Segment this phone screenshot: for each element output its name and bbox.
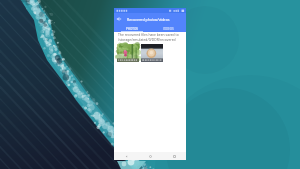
button[interactable]: Home [138,152,162,160]
staticText: VIDEOS [163,27,174,31]
button[interactable]: Recent apps [162,152,186,160]
button[interactable]: VIDEOS [150,25,186,32]
staticText: The recovered files have been saved to [118,32,179,37]
button[interactable]: PHOTOS [114,25,150,32]
button[interactable]: Back [114,13,124,25]
button[interactable]: Recovered photo [117,44,139,62]
button[interactable]: Recovered photo [141,44,163,62]
staticText: Recovered photos/videos [127,17,170,22]
button[interactable]: Back [114,152,138,160]
staticText: PHOTOS [126,27,138,31]
staticText: /storage/emulated/0/DDR/recovered [118,37,176,42]
